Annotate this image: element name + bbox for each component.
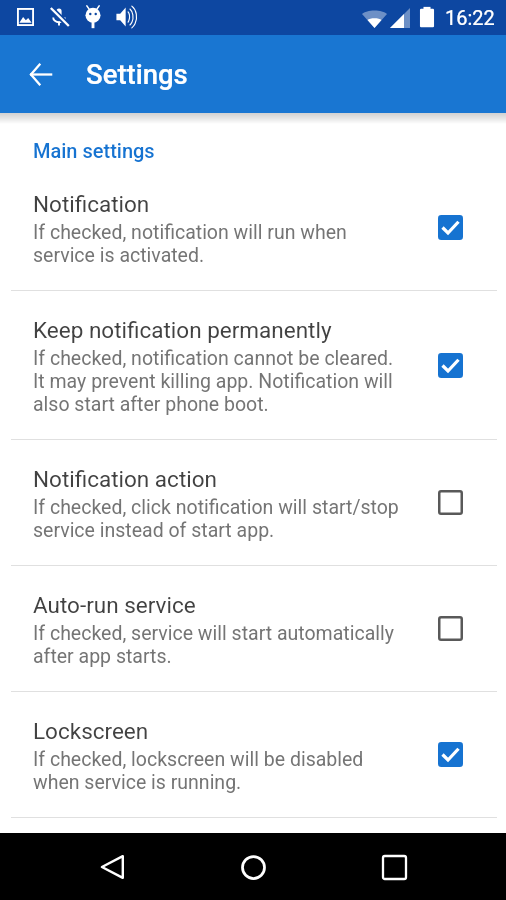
staticText: If checked, click notification will star… <box>33 496 399 519</box>
button[interactable]: Recent apps <box>365 838 423 896</box>
button[interactable]: Toggle setting <box>430 608 470 648</box>
staticText: It may prevent killing app. Notification… <box>33 370 393 393</box>
button[interactable]: Toggle setting <box>430 207 470 247</box>
button[interactable]: Back <box>83 838 141 896</box>
staticText: service instead of start app. <box>33 519 275 542</box>
button[interactable]: Lockscreen <box>0 692 506 817</box>
staticText: after app starts. <box>33 645 172 668</box>
staticText: service is activated. <box>33 244 205 267</box>
button[interactable]: Navigate up <box>0 35 81 113</box>
staticText: If checked, service will start automatic… <box>33 622 394 645</box>
staticText: when service is running. <box>33 771 242 794</box>
staticText: Settings <box>86 58 188 90</box>
button[interactable]: Toggle setting <box>430 345 470 385</box>
staticText: Lockscreen <box>33 718 149 744</box>
button[interactable]: Home <box>224 838 282 896</box>
staticText: If checked, notification cannot be clear… <box>33 347 394 370</box>
button[interactable]: Notification <box>0 165 506 290</box>
staticText: 16:22 <box>445 6 495 29</box>
staticText: Notification action <box>33 466 217 492</box>
staticText: Keep notification permanently <box>33 317 332 343</box>
button[interactable]: Notification action <box>0 440 506 565</box>
button[interactable]: Keep notification permanently <box>0 291 506 439</box>
staticText: Auto-run service <box>33 592 196 618</box>
staticText: If checked, lockscreen will be disabled <box>33 748 364 771</box>
staticText: Main settings <box>33 139 155 163</box>
button[interactable]: Auto-run service <box>0 566 506 691</box>
button[interactable]: Toggle setting <box>430 482 470 522</box>
staticText: If checked, notification will run when <box>33 221 347 244</box>
button[interactable]: Toggle setting <box>430 734 470 774</box>
staticText: also start after phone boot. <box>33 393 269 416</box>
staticText: Notification <box>33 191 150 217</box>
